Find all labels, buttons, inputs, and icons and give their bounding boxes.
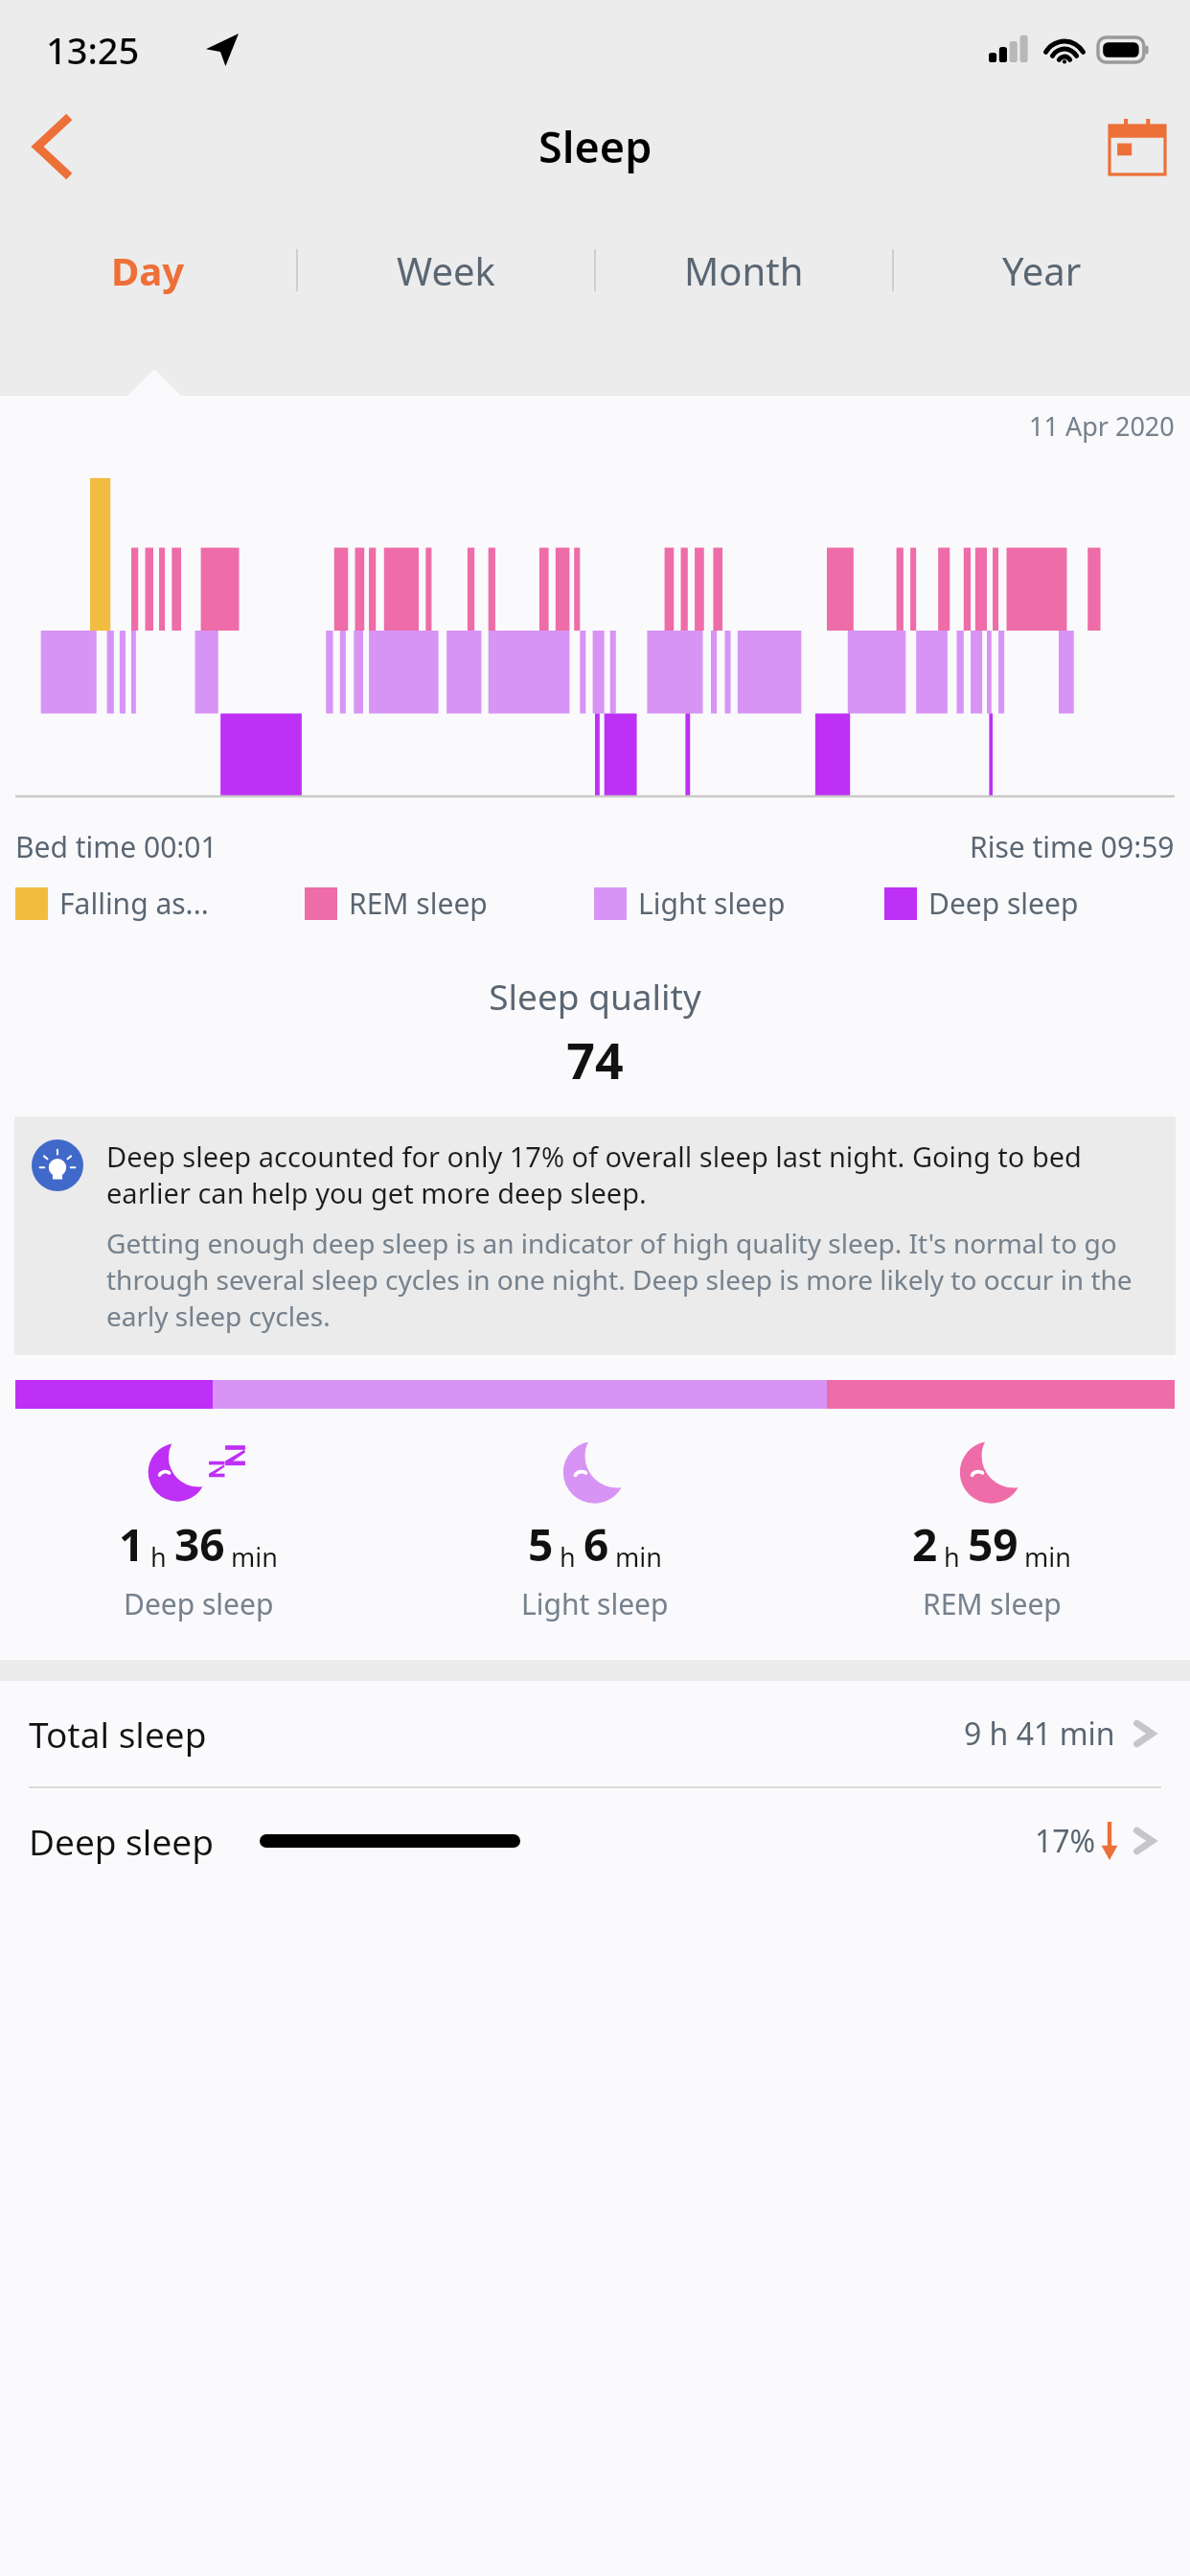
button[interactable]: Total sleep: [29, 1681, 1161, 1786]
staticText: min: [231, 1539, 278, 1575]
staticText: Light sleep: [638, 884, 786, 923]
staticText: min: [615, 1539, 662, 1575]
staticText: REM sleep: [349, 884, 488, 923]
staticText: Sleep: [538, 117, 652, 175]
staticText: 36: [174, 1514, 225, 1575]
staticText: 59: [968, 1514, 1018, 1575]
staticText: Light sleep: [521, 1584, 669, 1623]
staticText: 17%: [1035, 1820, 1096, 1862]
staticText: Deep sleep accounted for only 17% of ove…: [106, 1138, 1158, 1211]
button[interactable]: 1: [0, 1434, 397, 1623]
staticText: h: [944, 1539, 960, 1575]
staticText: Bed time 00:01: [15, 827, 217, 866]
staticText: Year: [1002, 244, 1082, 296]
staticText: h: [560, 1539, 576, 1575]
staticText: 74: [0, 1025, 1190, 1093]
button[interactable]: Week: [298, 215, 594, 326]
button[interactable]: 5: [397, 1434, 793, 1623]
button[interactable]: Deep sleep: [29, 1788, 1161, 1894]
staticText: Rise time 09:59: [970, 827, 1175, 866]
button[interactable]: Calendar: [1085, 94, 1190, 199]
staticText: Sleep quality: [0, 972, 1190, 1020]
staticText: min: [1024, 1539, 1071, 1575]
button[interactable]: 2: [793, 1434, 1190, 1623]
staticText: Week: [397, 244, 495, 296]
staticText: Deep sleep: [928, 884, 1079, 923]
staticText: Getting enough deep sleep is an indicato…: [106, 1225, 1158, 1334]
button[interactable]: Month: [596, 215, 892, 326]
staticText: 9 h 41 min: [964, 1713, 1115, 1755]
staticText: Total sleep: [29, 1710, 207, 1758]
staticText: Deep sleep: [124, 1584, 274, 1623]
staticText: 1: [119, 1514, 145, 1575]
staticText: Month: [684, 244, 804, 296]
staticText: REM sleep: [923, 1584, 1062, 1623]
staticText: 13:25: [46, 25, 140, 75]
button[interactable]: Back: [6, 101, 98, 193]
staticText: Deep sleep: [29, 1817, 214, 1865]
button[interactable]: Day: [0, 215, 296, 326]
staticText: 2: [912, 1514, 938, 1575]
staticText: 5: [528, 1514, 554, 1575]
staticText: Falling as...: [59, 884, 209, 923]
button[interactable]: Deep sleep accounted for only 17% of ove…: [14, 1116, 1176, 1355]
staticText: Day: [111, 244, 185, 296]
button[interactable]: Year: [894, 215, 1190, 326]
staticText: 11 Apr 2020: [1029, 408, 1175, 444]
staticText: 6: [584, 1514, 609, 1575]
staticText: h: [150, 1539, 167, 1575]
